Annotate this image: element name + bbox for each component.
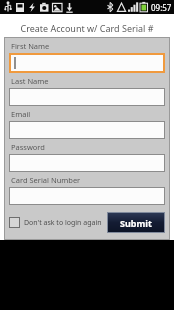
staticText: 09:57 (151, 2, 172, 13)
staticText: Submit (120, 217, 152, 229)
button[interactable] (9, 187, 165, 205)
button[interactable]: Submit (107, 212, 165, 233)
button[interactable] (9, 88, 165, 106)
staticText: Create Account w/ Card Serial # (0, 22, 174, 34)
staticText: Don't ask to login again (24, 218, 102, 228)
button[interactable]: Don't ask to login again (9, 217, 104, 228)
staticText: First Name (11, 41, 50, 51)
button[interactable] (9, 154, 165, 172)
button[interactable] (9, 53, 165, 73)
staticText: Password (11, 142, 45, 152)
button[interactable] (9, 121, 165, 139)
other: Status bar (0, 0, 174, 14)
staticText: Email (11, 109, 31, 119)
staticText: Last Name (11, 76, 49, 86)
staticText: Card Serial Number (11, 175, 81, 185)
